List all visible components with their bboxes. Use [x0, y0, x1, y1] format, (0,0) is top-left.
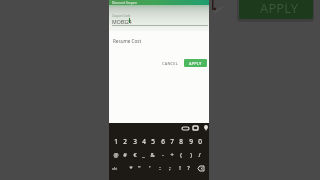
- button[interactable]: 6: [158, 135, 167, 147]
- staticText: +: [170, 151, 174, 159]
- button[interactable]: CANCEL: [158, 58, 181, 68]
- staticText: &: [150, 151, 155, 159]
- button[interactable]: 9: [186, 135, 195, 147]
- staticText: #: [123, 151, 127, 159]
- button[interactable]: Location: [202, 124, 210, 132]
- button[interactable]: =\<: [111, 162, 119, 174]
- button[interactable]: 3: [130, 135, 139, 147]
- button[interactable]: !: [175, 162, 184, 174]
- staticText: 0: [198, 137, 202, 146]
- staticText: APPLY: [189, 61, 202, 66]
- staticText: 1: [114, 137, 118, 146]
- button[interactable]: 5: [148, 135, 157, 147]
- staticText: MOBI24: [112, 18, 132, 25]
- staticText: Coupon Code: [112, 14, 131, 18]
- staticText: 7: [170, 137, 174, 146]
- button[interactable]: @: [111, 149, 120, 161]
- staticText: (: [180, 151, 182, 159]
- button[interactable]: (: [176, 149, 185, 161]
- staticText: 5: [151, 137, 155, 146]
- button[interactable]: Keyboard: [191, 124, 199, 132]
- staticText: ": [138, 164, 141, 172]
- staticText: 4: [142, 137, 146, 146]
- button[interactable]: ": [135, 162, 144, 174]
- staticText: CANCEL: [162, 61, 178, 66]
- staticText: 9: [189, 137, 193, 146]
- button[interactable]: /: [195, 149, 204, 161]
- button[interactable]: Clipboard: [181, 124, 189, 132]
- button[interactable]: ): [186, 149, 195, 161]
- staticText: APPLY: [260, 0, 299, 16]
- staticText: :: [159, 164, 161, 172]
- button[interactable]: :: [155, 162, 164, 174]
- staticText: ?: [187, 164, 190, 172]
- staticText: =\<: [112, 166, 118, 171]
- button[interactable]: #: [120, 149, 129, 161]
- button[interactable]: &: [148, 149, 157, 161]
- staticText: Discount Coupon: [112, 1, 138, 5]
- button[interactable]: 7: [167, 135, 176, 147]
- button[interactable]: ?: [184, 162, 193, 174]
- staticText: Resume Cost: [113, 38, 142, 44]
- button[interactable]: €: [130, 149, 139, 161]
- staticText: ): [190, 151, 192, 159]
- staticText: @: [113, 151, 119, 159]
- staticText: ;: [169, 164, 171, 172]
- button[interactable]: ;: [165, 162, 174, 174]
- button[interactable]: 2: [120, 135, 129, 147]
- button[interactable]: _: [139, 149, 148, 161]
- staticText: 2: [123, 137, 127, 146]
- staticText: /: [198, 151, 201, 159]
- staticText: €: [133, 151, 137, 159]
- button[interactable]: APPLY: [184, 59, 207, 67]
- button[interactable]: 1: [111, 135, 120, 147]
- button[interactable]: 8: [176, 135, 185, 147]
- button[interactable]: APPLY: [239, 0, 313, 19]
- button[interactable]: 0: [195, 135, 204, 147]
- button[interactable]: Backspace: [196, 162, 206, 174]
- staticText: -: [162, 151, 164, 159]
- staticText: 3: [133, 137, 137, 146]
- staticText: ': [149, 164, 151, 172]
- button[interactable]: +: [167, 149, 176, 161]
- staticText: 8: [179, 137, 183, 146]
- staticText: *: [129, 164, 133, 172]
- staticText: 6: [161, 137, 165, 146]
- button[interactable]: -: [158, 149, 167, 161]
- button[interactable]: *: [126, 162, 135, 174]
- staticText: !: [179, 164, 181, 172]
- staticText: _: [142, 151, 145, 159]
- button[interactable]: 4: [139, 135, 148, 147]
- button[interactable]: ': [145, 162, 154, 174]
